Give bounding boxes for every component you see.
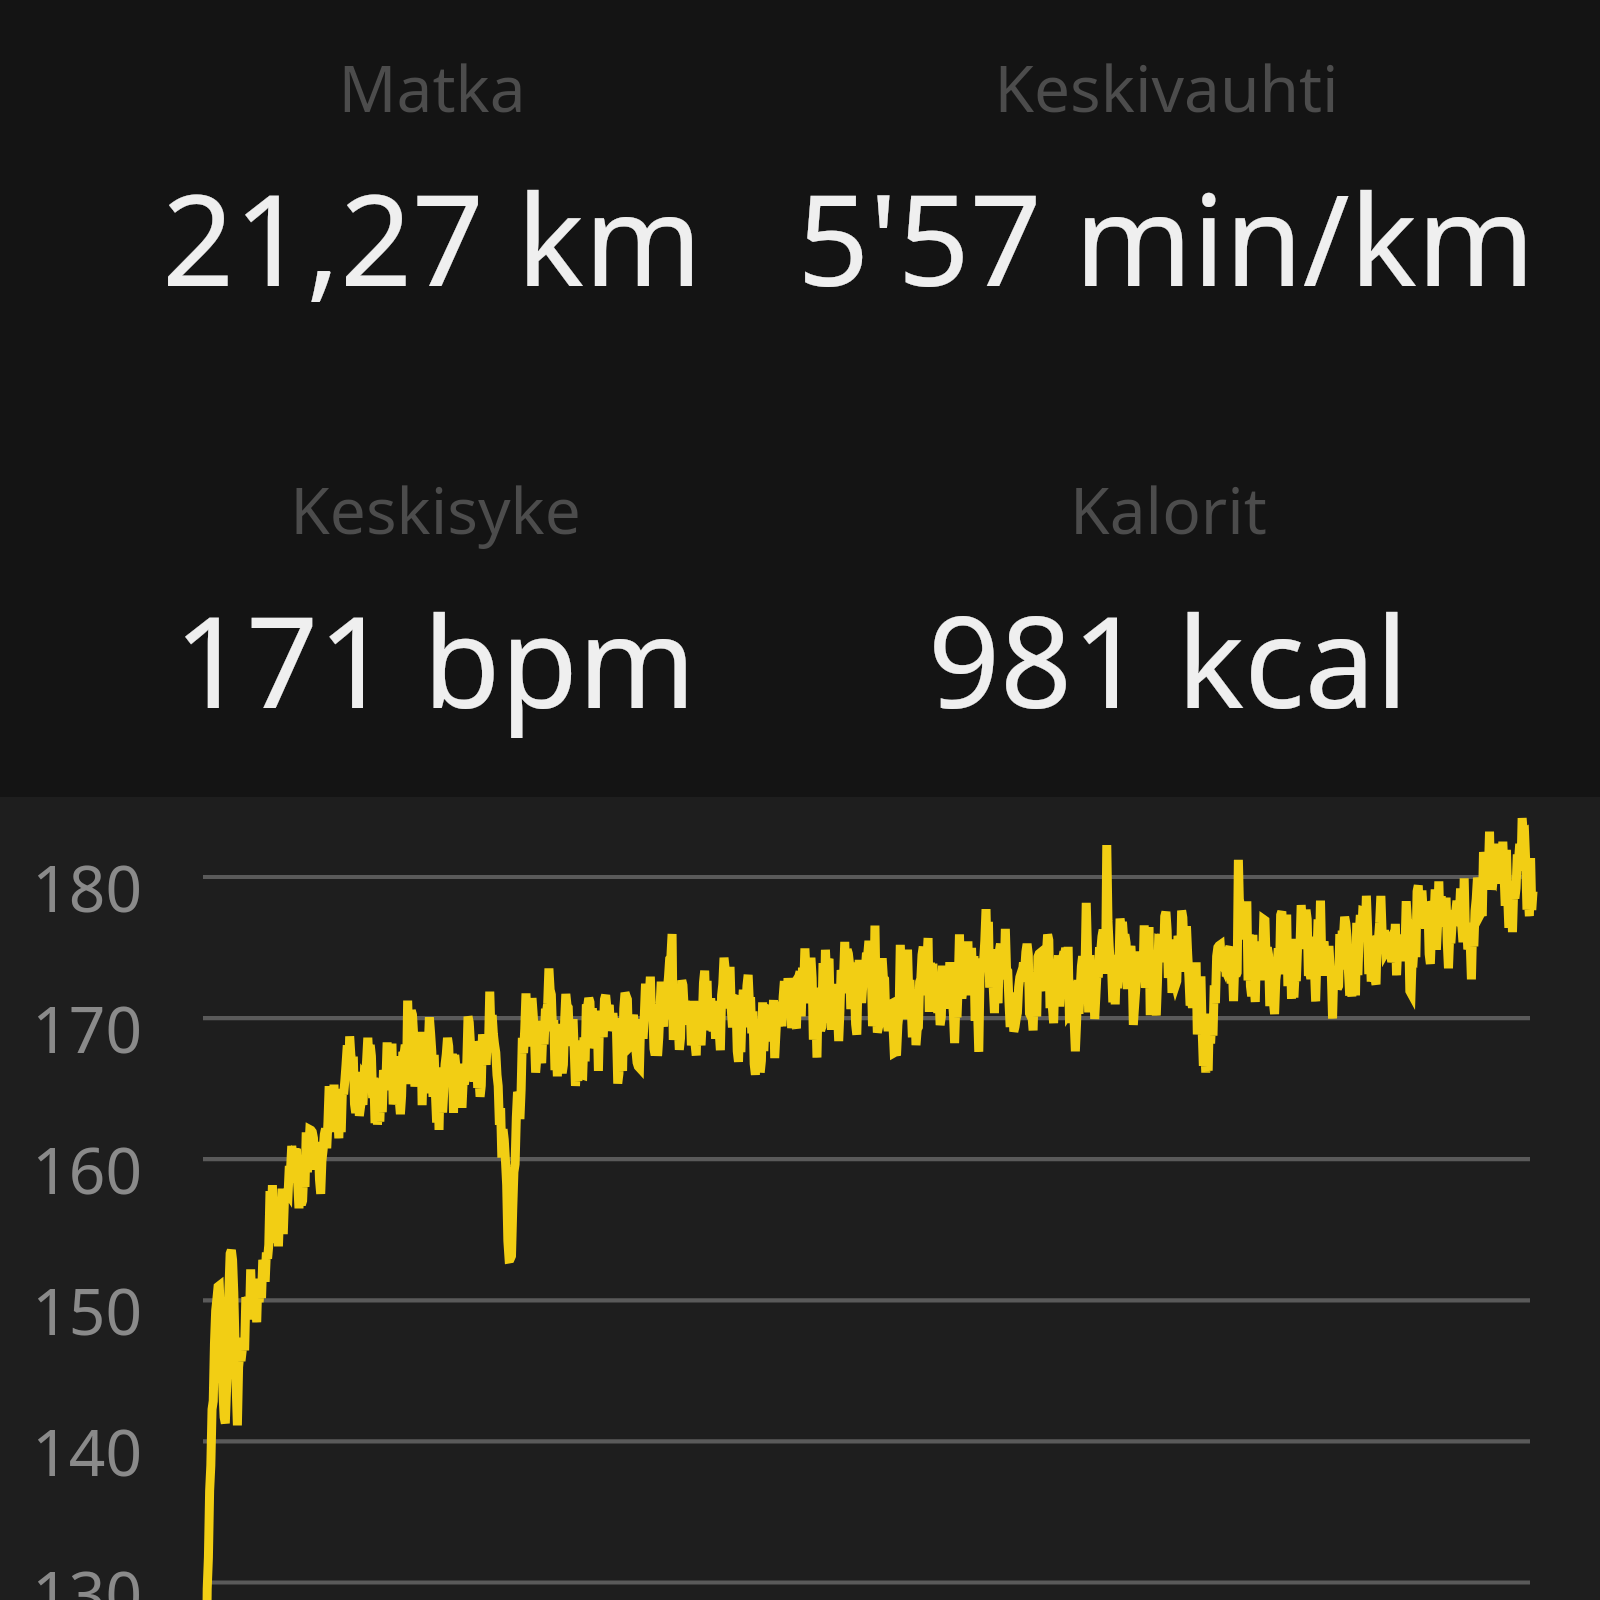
staticText: 170 — [32, 985, 142, 1072]
staticText: Keskivauhti — [994, 44, 1339, 131]
button[interactable]: Keskivauhti — [776, 44, 1556, 323]
button[interactable]: Heart rate graph — [0, 797, 1600, 1600]
button[interactable]: Matka — [42, 44, 822, 323]
staticText: 21,27 km — [162, 151, 702, 323]
staticText: 130 — [32, 1550, 142, 1600]
button[interactable]: Kalorit — [778, 466, 1558, 745]
staticText: 171 bpm — [174, 573, 696, 745]
staticText: Kalorit — [1070, 466, 1267, 553]
staticText: 140 — [32, 1408, 142, 1495]
staticText: 150 — [32, 1267, 142, 1354]
staticText: 180 — [32, 844, 142, 931]
staticText: 981 kcal — [928, 573, 1408, 745]
staticText: Matka — [338, 44, 526, 131]
staticText: Keskisyke — [290, 466, 581, 553]
staticText: 5'57 min/km — [797, 151, 1535, 323]
staticText: 160 — [32, 1126, 142, 1213]
button[interactable]: Keskisyke — [45, 466, 825, 745]
